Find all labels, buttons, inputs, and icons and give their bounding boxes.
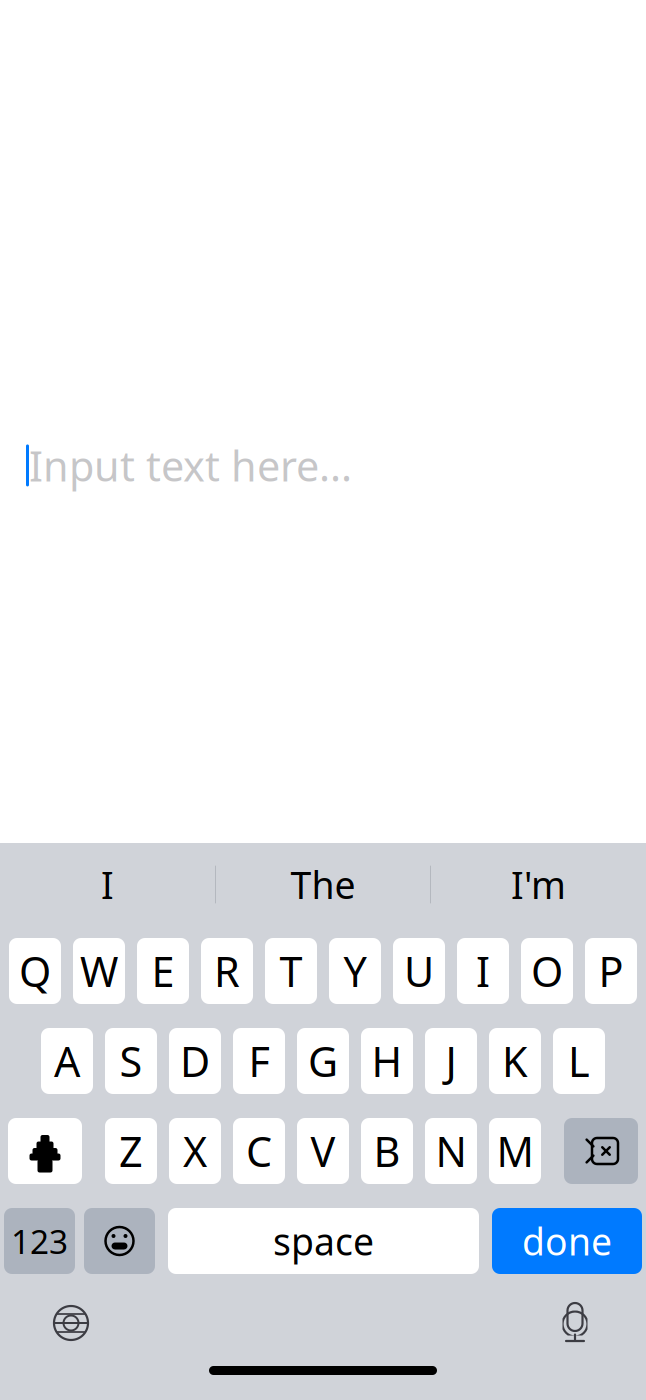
button[interactable]: G bbox=[297, 1028, 349, 1094]
staticText: M bbox=[496, 1124, 533, 1178]
button[interactable]: done bbox=[492, 1208, 642, 1274]
button[interactable]: I bbox=[0, 856, 215, 913]
staticText: G bbox=[308, 1034, 338, 1088]
button[interactable]: Dictation bbox=[556, 1302, 594, 1344]
button[interactable]: Next keyboard bbox=[52, 1304, 90, 1342]
staticText: done bbox=[522, 1216, 612, 1266]
button[interactable]: space bbox=[168, 1208, 479, 1274]
staticText: space bbox=[273, 1216, 374, 1266]
button[interactable]: The bbox=[216, 856, 430, 913]
button[interactable]: I bbox=[457, 938, 509, 1004]
staticText: L bbox=[568, 1034, 590, 1088]
button[interactable]: M bbox=[489, 1118, 541, 1184]
staticText: W bbox=[80, 944, 118, 998]
button[interactable]: X bbox=[169, 1118, 221, 1184]
button[interactable]: C bbox=[233, 1118, 285, 1184]
button[interactable]: Delete bbox=[564, 1118, 638, 1184]
button[interactable]: B bbox=[361, 1118, 413, 1184]
staticText: I bbox=[476, 944, 490, 998]
button[interactable]: O bbox=[521, 938, 573, 1004]
staticText: Z bbox=[119, 1124, 143, 1178]
button[interactable]: T bbox=[265, 938, 317, 1004]
staticText: B bbox=[373, 1124, 400, 1178]
staticText: U bbox=[404, 944, 434, 998]
button[interactable]: W bbox=[73, 938, 125, 1004]
button[interactable]: E bbox=[137, 938, 189, 1004]
button[interactable]: D bbox=[169, 1028, 221, 1094]
button[interactable]: Numbers and symbols bbox=[4, 1208, 75, 1274]
staticText: C bbox=[246, 1124, 272, 1178]
staticText: Q bbox=[19, 944, 51, 998]
staticText: N bbox=[435, 1124, 466, 1178]
button[interactable]: L bbox=[553, 1028, 605, 1094]
staticText: I bbox=[101, 860, 114, 909]
staticText: V bbox=[310, 1124, 335, 1178]
button[interactable]: R bbox=[201, 938, 253, 1004]
button[interactable]: K bbox=[489, 1028, 541, 1094]
staticText: F bbox=[248, 1034, 269, 1088]
button[interactable]: N bbox=[425, 1118, 477, 1184]
button[interactable]: A bbox=[41, 1028, 93, 1094]
button[interactable]: Z bbox=[105, 1118, 157, 1184]
staticText: 123 bbox=[11, 1219, 68, 1263]
staticText: K bbox=[502, 1034, 528, 1088]
button[interactable]: H bbox=[361, 1028, 413, 1094]
staticText: J bbox=[445, 1034, 456, 1088]
staticText: P bbox=[598, 944, 623, 998]
staticText: I'm bbox=[511, 860, 566, 909]
button[interactable]: J bbox=[425, 1028, 477, 1094]
button[interactable]: F bbox=[233, 1028, 285, 1094]
staticText: Y bbox=[343, 944, 366, 998]
staticText: S bbox=[119, 1034, 142, 1088]
button[interactable]: I'm bbox=[431, 856, 646, 913]
button[interactable]: Y bbox=[329, 938, 381, 1004]
staticText: Input text here... bbox=[29, 438, 352, 493]
button[interactable]: Shift bbox=[8, 1118, 82, 1184]
button[interactable]: S bbox=[105, 1028, 157, 1094]
staticText: H bbox=[371, 1034, 402, 1088]
button[interactable]: Q bbox=[9, 938, 61, 1004]
staticText: D bbox=[180, 1034, 210, 1088]
staticText: The bbox=[290, 860, 355, 909]
staticText: O bbox=[531, 944, 563, 998]
button[interactable]: U bbox=[393, 938, 445, 1004]
staticText: A bbox=[54, 1034, 80, 1088]
staticText: E bbox=[151, 944, 174, 998]
staticText: T bbox=[279, 944, 302, 998]
button[interactable]: P bbox=[585, 938, 637, 1004]
staticText: R bbox=[214, 944, 240, 998]
button[interactable]: Emoji bbox=[84, 1208, 155, 1274]
staticText: X bbox=[183, 1124, 207, 1178]
button[interactable]: V bbox=[297, 1118, 349, 1184]
